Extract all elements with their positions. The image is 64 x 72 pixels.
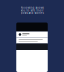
staticText: Following allows: [20, 6, 43, 9]
staticText: posts and stories: [20, 12, 43, 14]
staticText: you to see their: [20, 9, 43, 12]
